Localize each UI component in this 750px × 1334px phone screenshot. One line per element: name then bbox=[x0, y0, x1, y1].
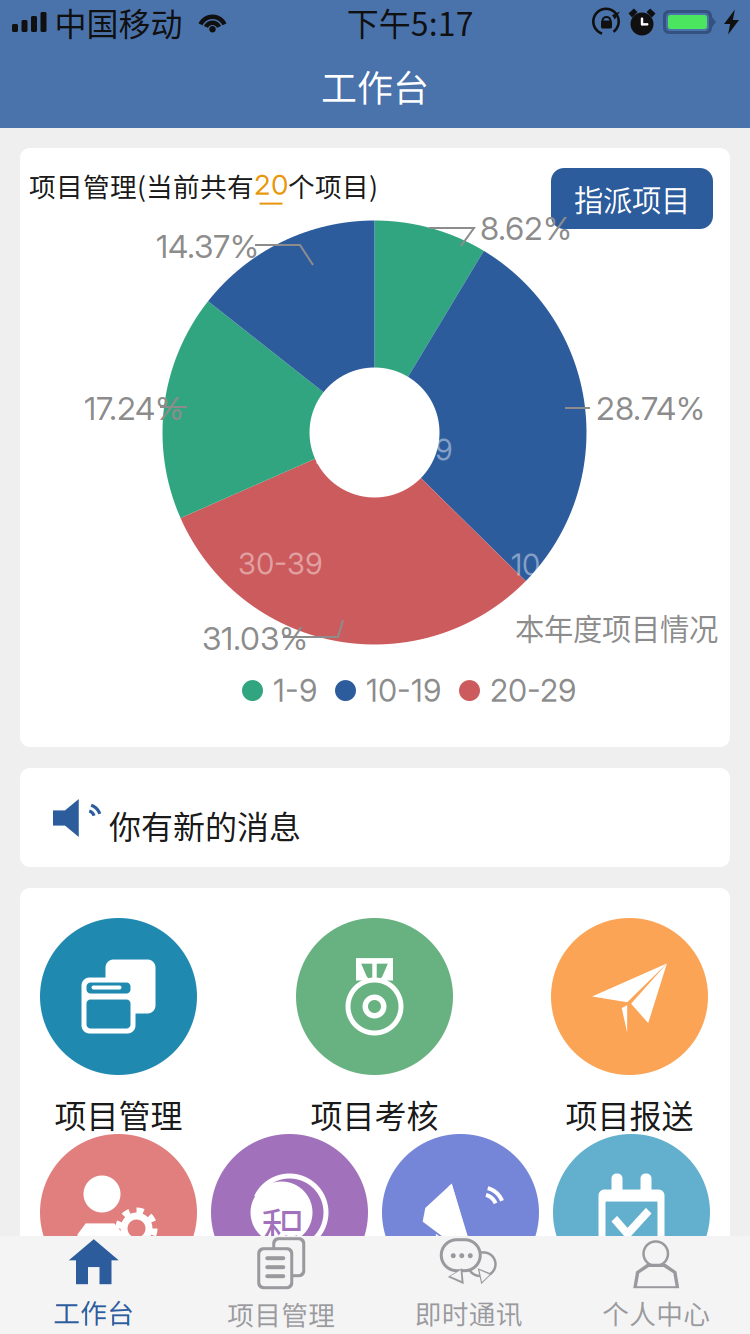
staticText: 31.03% bbox=[202, 619, 308, 658]
staticText: 项目管理 bbox=[227, 1294, 335, 1333]
button[interactable]: 快捷功能 bbox=[553, 1134, 710, 1291]
staticText: 1-9 bbox=[273, 672, 317, 709]
staticText: 本年度项目情况 bbox=[515, 606, 718, 648]
button[interactable]: 个人中心 bbox=[562, 1236, 750, 1334]
staticText: 即时通讯 bbox=[415, 1293, 523, 1332]
button[interactable]: 项目报送 bbox=[551, 918, 708, 1137]
staticText: 工作台 bbox=[321, 60, 429, 112]
button[interactable]: 快捷功能 bbox=[211, 1134, 368, 1291]
staticText: 个项目) bbox=[288, 166, 378, 205]
staticText: 中国移动 bbox=[54, 0, 182, 45]
staticText: 下午5:17 bbox=[347, 0, 474, 45]
staticText: 积 bbox=[261, 1195, 304, 1257]
button[interactable]: 项目考核 bbox=[296, 918, 453, 1137]
staticText: 1-9 bbox=[411, 432, 453, 467]
button[interactable]: 项目管理 bbox=[40, 918, 197, 1137]
staticText: 40-49 bbox=[315, 440, 402, 475]
staticText: 14.37% bbox=[156, 227, 259, 266]
staticText: 个人中心 bbox=[602, 1293, 710, 1332]
staticText: 30-39 bbox=[238, 546, 323, 581]
staticText: 28.74% bbox=[596, 389, 705, 428]
button[interactable]: 项目管理 bbox=[187, 1236, 375, 1334]
staticText: 工作台 bbox=[53, 1292, 134, 1331]
staticText: 项目管理(当前共有 bbox=[29, 166, 254, 205]
staticText: 8.62% bbox=[480, 209, 572, 248]
staticText: 10-19 bbox=[511, 547, 582, 582]
staticText: 20-29 bbox=[490, 672, 576, 709]
staticText: 指派项目 bbox=[574, 177, 690, 220]
staticText: 项目管理 bbox=[54, 1091, 182, 1137]
staticText: 你有新的消息 bbox=[109, 802, 301, 848]
button[interactable]: 工作台 bbox=[0, 1236, 187, 1334]
button[interactable]: 指派项目 bbox=[551, 168, 713, 229]
button[interactable]: 你有新的消息 bbox=[20, 768, 730, 867]
button[interactable]: 快捷功能 bbox=[40, 1134, 197, 1291]
staticText: 项目考核 bbox=[310, 1091, 438, 1137]
staticText: 20 bbox=[254, 168, 288, 202]
staticText: 17.24% bbox=[84, 389, 184, 428]
button[interactable]: 即时通讯 bbox=[375, 1236, 562, 1334]
staticText: 项目报送 bbox=[565, 1091, 693, 1137]
button[interactable]: 快捷功能 bbox=[382, 1134, 539, 1291]
staticText: 10-19 bbox=[366, 672, 441, 709]
